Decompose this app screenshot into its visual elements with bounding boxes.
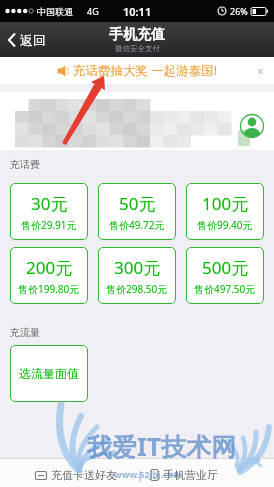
staticText: 充流量 — [10, 326, 40, 339]
staticText: www.52jbj.com — [114, 468, 183, 480]
staticText: 售价49.72元 — [109, 218, 165, 232]
staticText: 我爱IT技术网 — [87, 429, 237, 463]
staticText: × — [257, 63, 264, 79]
staticText: 中国联通 — [37, 6, 73, 17]
button[interactable]: 手机营业厅 — [150, 468, 218, 482]
staticText: 售价497.50元 — [194, 282, 256, 296]
staticText: | — [137, 467, 144, 482]
button[interactable]: 充值卡送好友 — [35, 468, 117, 482]
staticText: 手机充值 — [109, 26, 165, 44]
staticText: 售价298.50元 — [106, 282, 168, 296]
staticText: 200元 — [26, 256, 73, 279]
staticText: 返回 — [20, 32, 46, 48]
staticText: 充值卡送好友 — [51, 468, 117, 482]
staticText: 手机营业厅 — [163, 468, 218, 482]
staticText: 50元 — [119, 192, 156, 215]
staticText: 30元 — [31, 192, 68, 215]
button[interactable] — [236, 106, 266, 146]
staticText: 售价99.40元 — [197, 218, 253, 232]
staticText: 充话费抽大奖 一起游泰国! — [73, 62, 218, 79]
button[interactable]: 50元 — [98, 183, 176, 240]
staticText: 26% — [230, 5, 248, 17]
staticText: 100元 — [202, 192, 249, 215]
staticText: 300元 — [114, 256, 161, 279]
button[interactable]: 充话费抽大奖 一起游泰国! — [0, 57, 274, 84]
button[interactable]: 200元 — [10, 247, 88, 304]
button[interactable]: 300元 — [98, 247, 176, 304]
staticText: 微信安全支付 — [115, 44, 160, 53]
staticText: 售价29.91元 — [21, 218, 77, 232]
button[interactable]: 30元 — [10, 183, 88, 240]
staticText: 10:11 — [123, 4, 152, 19]
button[interactable]: 选流量面值 — [10, 345, 88, 402]
button[interactable]: 返回 — [7, 32, 46, 48]
staticText: 售价199.80元 — [18, 282, 80, 296]
staticText: 充话费 — [10, 158, 40, 171]
button[interactable]: 100元 — [186, 183, 264, 240]
staticText: 500元 — [202, 256, 249, 279]
button[interactable]: 500元 — [186, 247, 264, 304]
staticText: 选流量面值 — [19, 366, 79, 381]
staticText: 4G — [87, 5, 99, 17]
